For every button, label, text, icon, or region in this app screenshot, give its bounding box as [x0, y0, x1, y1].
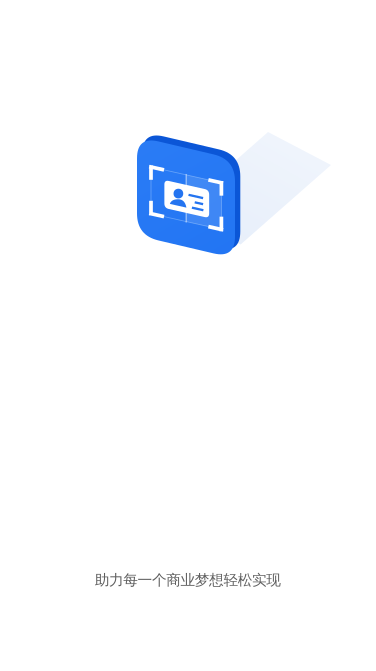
staticText: 助力每一个商业梦想轻松实现: [95, 571, 281, 589]
